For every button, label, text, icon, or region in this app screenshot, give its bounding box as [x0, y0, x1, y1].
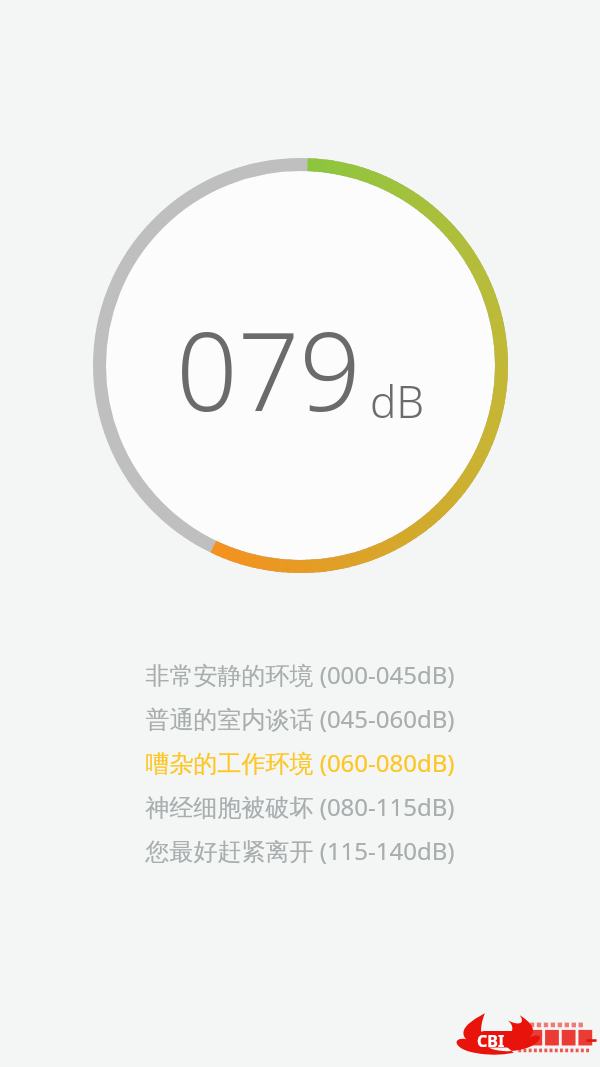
other: CbiGame watermark — [453, 1007, 598, 1059]
staticText: 嘈杂的工作环境 (060-080dB) — [145, 746, 455, 779]
staticText: 神经细胞被破坏 (080-115dB) — [145, 790, 455, 823]
button[interactable]: 神经细胞被破坏 (080-115dB) — [0, 784, 600, 828]
staticText: 您最好赶紧离开 (115-140dB) — [145, 834, 455, 867]
button[interactable]: 非常安静的环境 (000-045dB) — [0, 652, 600, 696]
button[interactable]: 普通的室内谈话 (045-060dB) — [0, 696, 600, 740]
button[interactable]: Noise level gauge 79 decibels — [93, 158, 508, 573]
staticText: dB — [370, 371, 425, 431]
staticText: 普通的室内谈话 (045-060dB) — [145, 702, 455, 735]
staticText: 非常安静的环境 (000-045dB) — [145, 658, 455, 691]
staticText: CBI — [477, 1030, 505, 1052]
button[interactable]: 您最好赶紧离开 (115-140dB) — [0, 828, 600, 872]
staticText: 079 — [176, 296, 362, 443]
button[interactable]: 嘈杂的工作环境 (060-080dB) — [0, 740, 600, 784]
